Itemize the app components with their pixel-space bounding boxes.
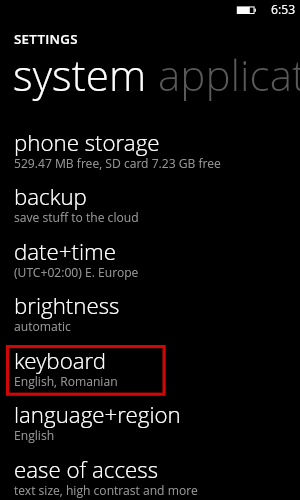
staticText: English	[14, 427, 55, 443]
staticText: ease of access	[14, 454, 159, 484]
button[interactable]: language+region	[0, 394, 300, 446]
staticText: save stuff to the cloud	[14, 209, 139, 225]
staticText: phone storage	[14, 127, 160, 157]
staticText: 6:53	[271, 1, 296, 18]
button[interactable]: brightness	[0, 285, 300, 337]
other: Battery	[234, 2, 260, 18]
button[interactable]: system	[13, 46, 147, 103]
button[interactable]: applications	[147, 46, 300, 103]
staticText: English, Romanian	[14, 373, 118, 389]
staticText: SETTINGS	[14, 30, 78, 48]
button[interactable]: backup	[0, 176, 300, 228]
staticText: text size, high contrast and more	[14, 482, 198, 498]
staticText: date+time	[14, 236, 116, 266]
staticText: automatic	[14, 318, 71, 334]
staticText: backup	[14, 181, 87, 211]
staticText: (UTC+02:00) E. Europe	[14, 264, 139, 280]
button[interactable]: date+time	[0, 231, 300, 283]
staticText: brightness	[14, 290, 120, 320]
staticText: language+region	[14, 399, 181, 429]
staticText: 529.47 MB free, SD card 7.23 GB free	[14, 155, 221, 171]
button[interactable]: phone storage	[0, 122, 300, 174]
staticText: keyboard	[14, 345, 107, 375]
button[interactable]: ease of access	[0, 449, 300, 500]
button[interactable]: keyboard	[0, 340, 300, 392]
